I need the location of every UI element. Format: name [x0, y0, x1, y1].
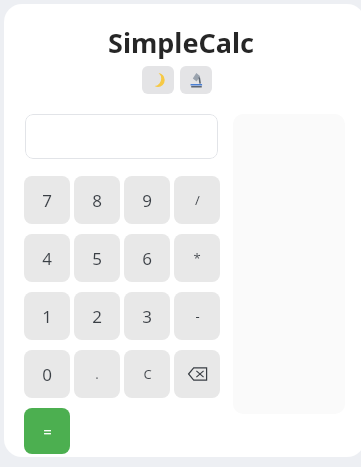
staticText: C: [143, 365, 152, 383]
button[interactable]: [25, 114, 218, 159]
button[interactable]: 1: [24, 292, 70, 340]
button[interactable]: =: [24, 408, 70, 454]
staticText: -: [195, 307, 200, 325]
staticText: 5: [92, 247, 102, 270]
button[interactable]: /: [174, 176, 220, 224]
button[interactable]: C: [124, 350, 170, 398]
staticText: 4: [42, 247, 52, 270]
staticText: .: [95, 365, 99, 383]
staticText: 2: [92, 305, 102, 328]
button[interactable]: Backspace: [174, 350, 220, 398]
button[interactable]: 7: [24, 176, 70, 224]
button[interactable]: 2: [74, 292, 120, 340]
button[interactable]: Toggle dark mode: [142, 66, 174, 94]
staticText: 3: [142, 305, 152, 328]
staticText: 7: [42, 189, 52, 212]
button[interactable]: 6: [124, 234, 170, 282]
staticText: =: [43, 421, 52, 441]
button[interactable]: .: [74, 350, 120, 398]
button[interactable]: 0: [24, 350, 70, 398]
staticText: 6: [142, 247, 152, 270]
button[interactable]: 9: [124, 176, 170, 224]
button[interactable]: -: [174, 292, 220, 340]
button[interactable]: *: [174, 234, 220, 282]
staticText: 8: [92, 189, 102, 212]
staticText: SimpleCalc: [108, 24, 254, 61]
button[interactable]: 4: [24, 234, 70, 282]
button[interactable]: 5: [74, 234, 120, 282]
staticText: 0: [42, 363, 52, 386]
button[interactable]: 8: [74, 176, 120, 224]
button[interactable]: 3: [124, 292, 170, 340]
staticText: /: [195, 191, 200, 209]
button[interactable]: Scientific mode: [180, 66, 212, 94]
staticText: *: [193, 249, 201, 267]
staticText: 1: [42, 305, 52, 328]
staticText: 9: [142, 189, 152, 212]
